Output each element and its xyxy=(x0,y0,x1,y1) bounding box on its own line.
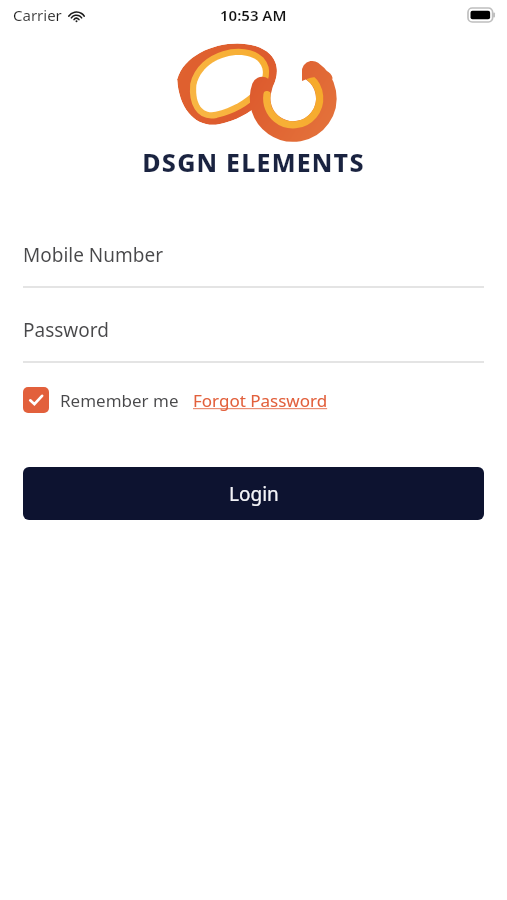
staticText: Password xyxy=(23,317,109,343)
staticText: DSGN ELEMENTS xyxy=(0,145,507,179)
button[interactable]: Login xyxy=(23,467,484,520)
staticText: Mobile Number xyxy=(23,242,164,268)
staticText: 10:53 AM xyxy=(220,5,287,25)
staticText: Carrier xyxy=(13,5,62,25)
button[interactable]: Mobile Number xyxy=(0,242,507,288)
button[interactable]: Password xyxy=(0,317,507,363)
button[interactable]: Forgot Password xyxy=(193,389,328,412)
button[interactable]: Remember me xyxy=(23,387,183,413)
staticText: Remember me xyxy=(60,389,179,412)
staticText: Login xyxy=(229,481,279,507)
staticText: Forgot Password xyxy=(193,389,328,412)
